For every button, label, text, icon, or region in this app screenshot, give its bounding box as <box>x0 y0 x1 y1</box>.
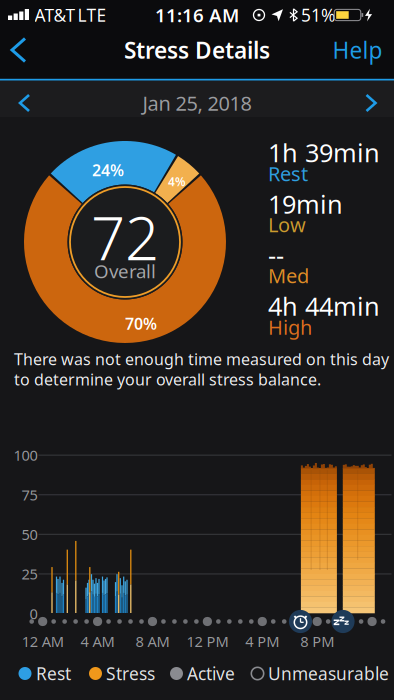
staticText: 11:16 AM <box>155 3 239 27</box>
staticText: Rest <box>36 662 71 685</box>
staticText: High <box>268 314 312 340</box>
staticText: Jan 25, 2018 <box>142 90 251 116</box>
staticText: Stress Details <box>124 35 270 65</box>
staticText: -- <box>268 238 284 272</box>
button[interactable]: Next day <box>366 95 375 111</box>
staticText: 25 <box>21 564 37 584</box>
staticText: Overall <box>94 259 156 283</box>
staticText: Unmeasurable <box>268 662 389 685</box>
staticText: Rest <box>268 160 308 187</box>
staticText: Med <box>268 262 309 289</box>
staticText: 4 AM <box>81 631 115 651</box>
staticText: 0 <box>29 604 37 623</box>
staticText: AT&T <box>34 3 75 26</box>
staticText: to determine your overall stress balance… <box>14 369 321 390</box>
staticText: 50 <box>21 525 37 544</box>
staticText: There was not enough time measured on th… <box>14 348 389 370</box>
button[interactable]: Help <box>332 35 382 65</box>
staticText: 24% <box>92 159 124 181</box>
staticText: 8 PM <box>300 631 334 651</box>
staticText: 72 <box>91 197 159 277</box>
staticText: 1h 39min <box>268 136 380 169</box>
button[interactable]: Back <box>12 38 25 61</box>
staticText: 51% <box>301 3 335 26</box>
staticText: 19min <box>268 187 343 221</box>
staticText: 4 PM <box>245 631 279 651</box>
staticText: 4h 44min <box>268 289 380 323</box>
staticText: Help <box>332 35 382 65</box>
staticText: LTE <box>77 3 106 26</box>
staticText: 8 AM <box>135 631 169 651</box>
staticText: 4% <box>168 173 186 189</box>
button[interactable]: Previous day <box>20 95 29 111</box>
staticText: 70% <box>125 313 157 334</box>
staticText: Active <box>187 662 235 685</box>
staticText: 100 <box>13 445 37 465</box>
staticText: Low <box>268 211 306 238</box>
staticText: 75 <box>21 485 37 504</box>
staticText: 12 PM <box>186 631 228 651</box>
staticText: Stress <box>106 662 155 685</box>
staticText: 12 AM <box>22 631 64 651</box>
